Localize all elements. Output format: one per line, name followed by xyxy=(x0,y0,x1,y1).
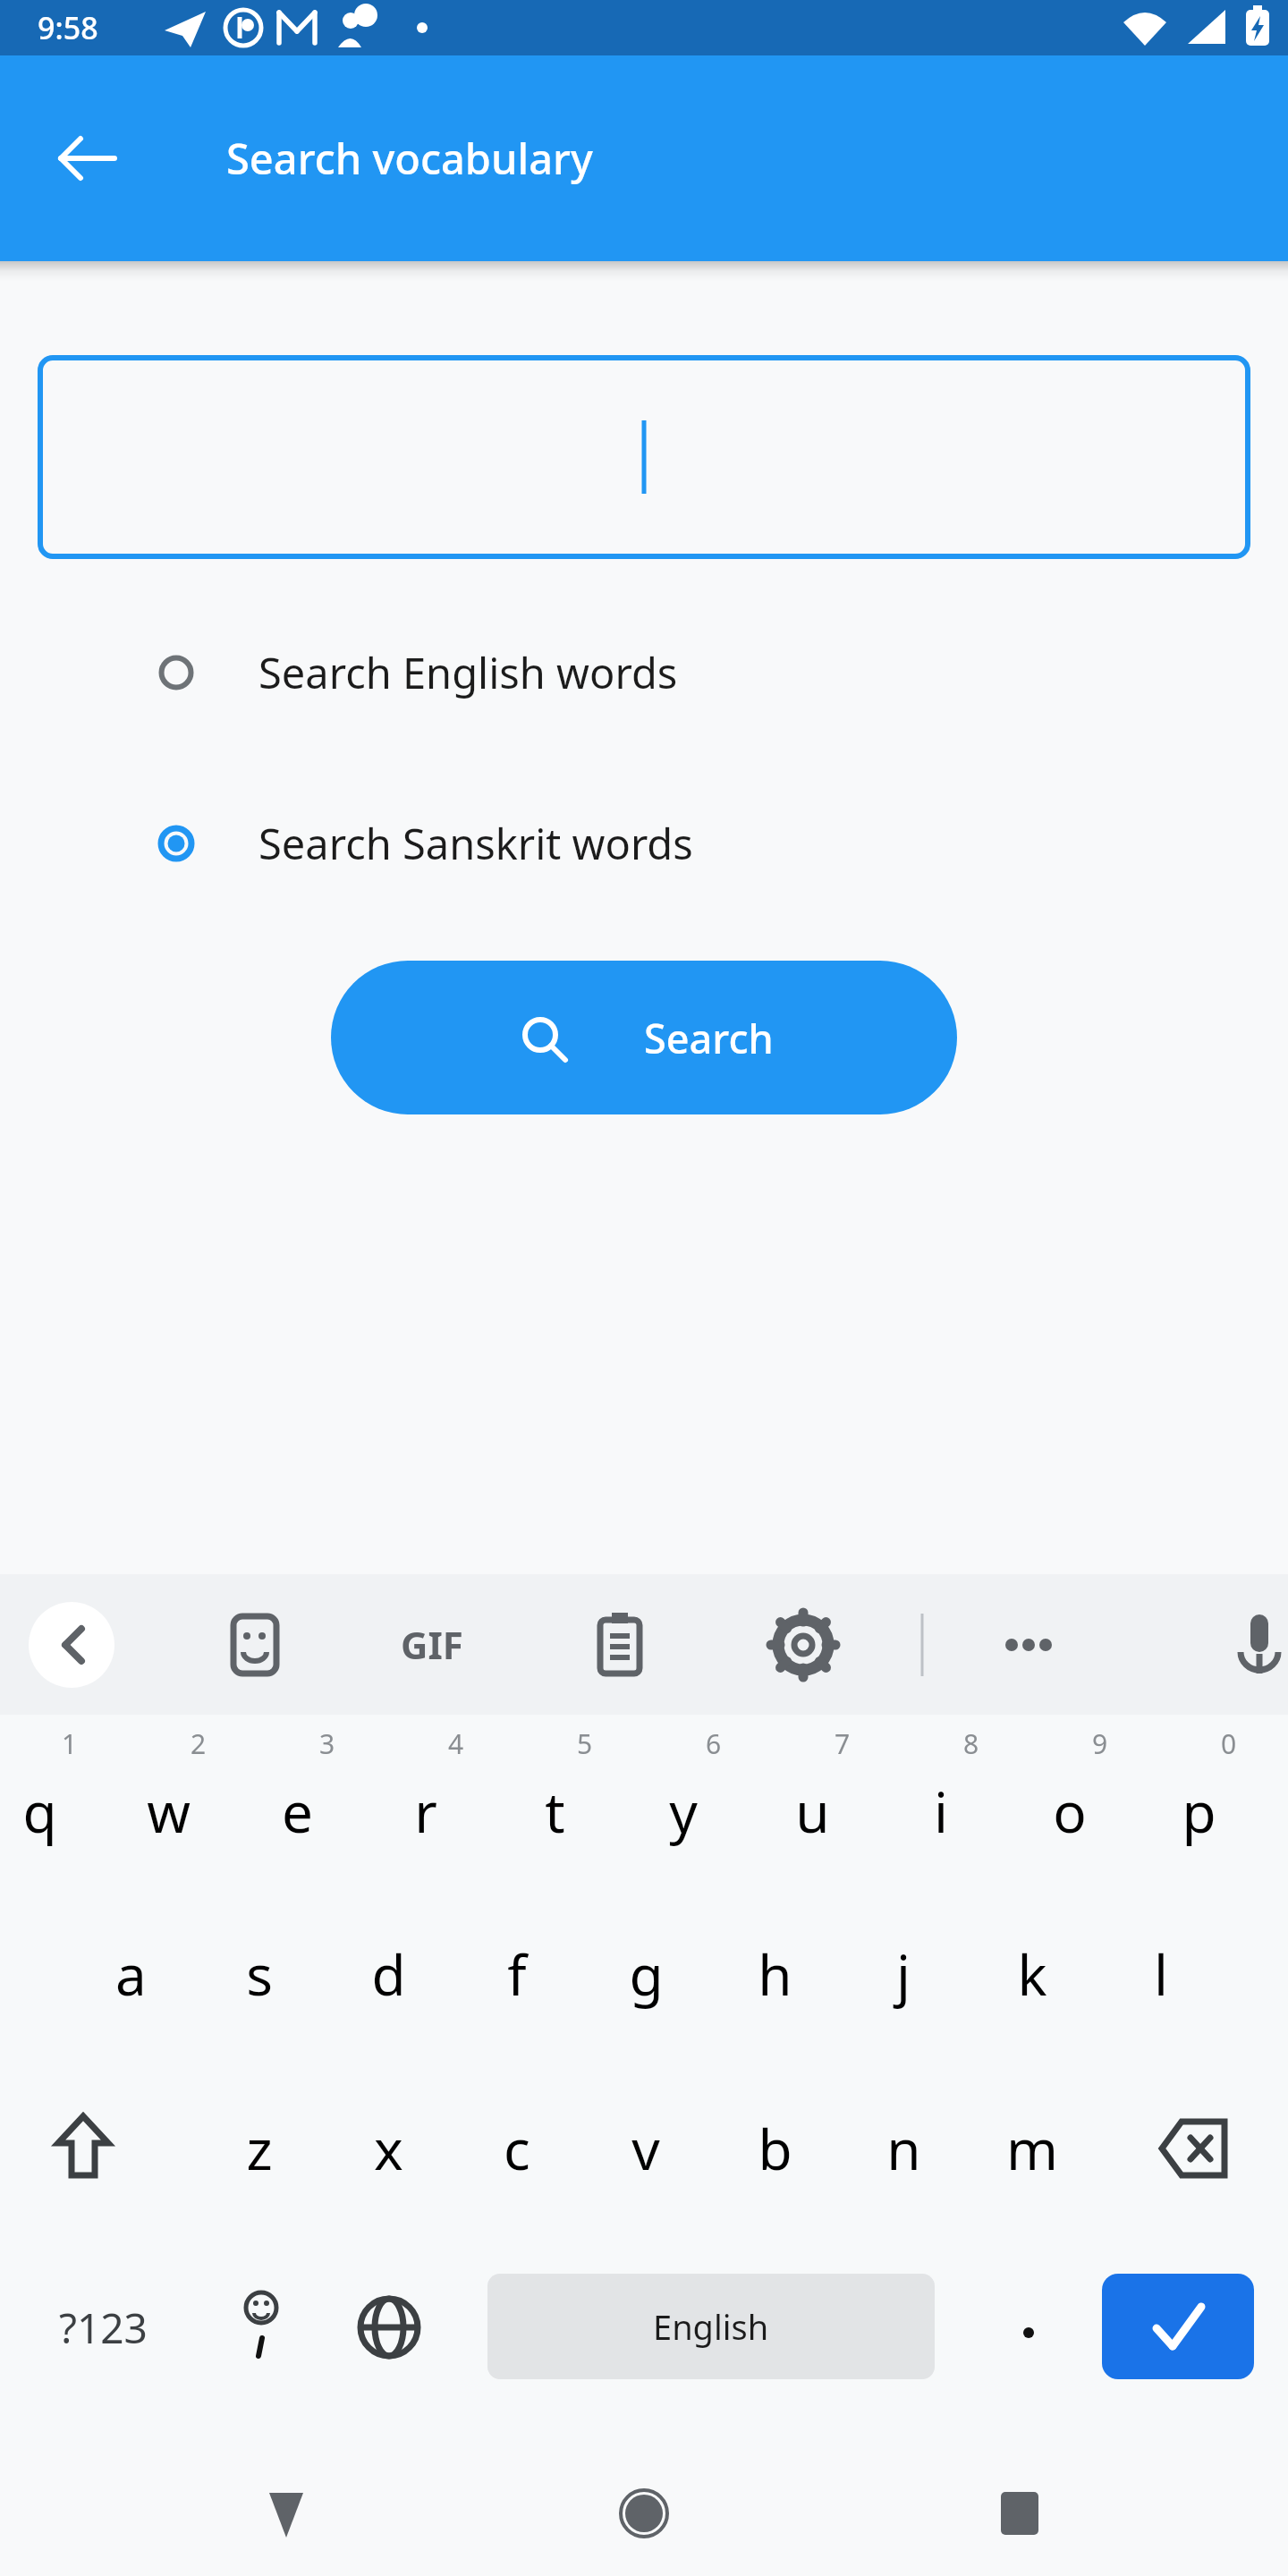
staticText: k xyxy=(1017,1936,1047,2012)
staticText: x xyxy=(374,2111,403,2186)
staticText: a xyxy=(115,1936,147,2012)
button[interactable]: GIF xyxy=(401,1619,463,1670)
button[interactable]: Search xyxy=(331,961,957,1114)
button[interactable]: h xyxy=(710,1889,839,2059)
staticText: c xyxy=(504,2111,530,2186)
button[interactable]: n xyxy=(839,2059,968,2238)
staticText: 3 xyxy=(319,1725,335,1762)
staticText: 9 xyxy=(1092,1725,1108,1762)
button[interactable]: Close toolbar xyxy=(29,1602,114,1688)
staticText: 9:58 xyxy=(38,7,98,48)
staticText: 4 xyxy=(448,1725,464,1762)
button[interactable]: 5 xyxy=(490,1715,619,1889)
staticText: y xyxy=(669,1774,698,1849)
staticText: i xyxy=(934,1774,948,1849)
staticText: v xyxy=(631,2111,660,2186)
button[interactable]: c xyxy=(453,2059,581,2238)
staticText: f xyxy=(507,1936,527,2012)
button[interactable]: Shift xyxy=(0,2059,134,2238)
staticText: 7 xyxy=(835,1725,851,1762)
button[interactable]: Voice input xyxy=(1206,1591,1288,1699)
button[interactable]: 6 xyxy=(619,1715,748,1889)
staticText: e xyxy=(282,1774,313,1849)
button[interactable]: Emoji and comma xyxy=(199,2238,324,2417)
button[interactable] xyxy=(38,355,1250,559)
button[interactable]: Home xyxy=(581,2451,707,2576)
button[interactable]: g xyxy=(581,1889,710,2059)
staticText: w xyxy=(147,1774,191,1849)
staticText: 8 xyxy=(963,1725,979,1762)
button[interactable]: Search English words xyxy=(0,633,1288,712)
staticText: Search vocabulary xyxy=(226,130,593,187)
button[interactable]: j xyxy=(839,1889,968,2059)
button[interactable]: Backspace xyxy=(1123,2059,1266,2238)
staticText: English xyxy=(653,2303,769,2350)
staticText: z xyxy=(246,2111,273,2186)
staticText: 1 xyxy=(62,1725,78,1762)
staticText: Search English words xyxy=(258,644,678,701)
staticText: n xyxy=(886,2111,921,2186)
staticText: Search Sanskrit words xyxy=(258,815,693,872)
button[interactable]: l xyxy=(1097,1889,1225,2059)
button[interactable]: 2 xyxy=(104,1715,233,1889)
button[interactable]: 4 xyxy=(361,1715,490,1889)
button[interactable]: 8 xyxy=(877,1715,1005,1889)
staticText: 6 xyxy=(706,1725,722,1762)
button[interactable]: f xyxy=(453,1889,581,2059)
staticText: r xyxy=(414,1774,437,1849)
button[interactable]: Period xyxy=(975,2238,1082,2417)
button[interactable]: b xyxy=(710,2059,839,2238)
button[interactable]: Clipboard xyxy=(566,1591,674,1699)
button[interactable]: k xyxy=(968,1889,1097,2059)
button[interactable]: More options xyxy=(975,1591,1082,1699)
staticText: s xyxy=(246,1936,273,2012)
button[interactable]: v xyxy=(581,2059,710,2238)
staticText: h xyxy=(758,1936,792,2012)
button[interactable]: 3 xyxy=(233,1715,361,1889)
button[interactable]: English xyxy=(487,2274,935,2379)
staticText: Search xyxy=(644,1011,774,1065)
staticText: d xyxy=(371,1936,406,2012)
button[interactable]: Stickers xyxy=(201,1591,309,1699)
staticText: ?123 xyxy=(59,2300,148,2356)
staticText: b xyxy=(758,2111,792,2186)
staticText: t xyxy=(545,1774,565,1849)
button[interactable]: a xyxy=(66,1889,195,2059)
staticText: p xyxy=(1182,1774,1216,1849)
button[interactable]: d xyxy=(324,1889,453,2059)
button[interactable]: m xyxy=(968,2059,1097,2238)
button[interactable]: 0 xyxy=(1134,1715,1263,1889)
button[interactable]: 1 xyxy=(0,1715,104,1889)
button[interactable]: Enter xyxy=(1102,2274,1254,2379)
button[interactable]: Search Sanskrit words xyxy=(0,804,1288,883)
button[interactable]: 9 xyxy=(1005,1715,1134,1889)
button[interactable]: x xyxy=(324,2059,453,2238)
staticText: j xyxy=(896,1936,911,2012)
button[interactable]: Settings xyxy=(750,1591,857,1699)
button[interactable]: s xyxy=(195,1889,324,2059)
staticText: o xyxy=(1053,1774,1087,1849)
button[interactable]: z xyxy=(195,2059,324,2238)
staticText: u xyxy=(795,1774,830,1849)
staticText: g xyxy=(629,1936,664,2012)
button[interactable]: Back xyxy=(34,105,141,212)
button[interactable]: Recent apps xyxy=(957,2451,1082,2576)
staticText: 2 xyxy=(191,1725,207,1762)
staticText: l xyxy=(1154,1936,1168,2012)
button[interactable]: Change language xyxy=(331,2238,447,2417)
staticText: m xyxy=(1006,2111,1058,2186)
staticText: 0 xyxy=(1221,1725,1237,1762)
button[interactable]: 7 xyxy=(748,1715,877,1889)
staticText: 5 xyxy=(577,1725,593,1762)
staticText: q xyxy=(22,1774,57,1849)
button[interactable]: ?123 xyxy=(18,2238,188,2417)
button[interactable]: Back xyxy=(224,2451,349,2576)
